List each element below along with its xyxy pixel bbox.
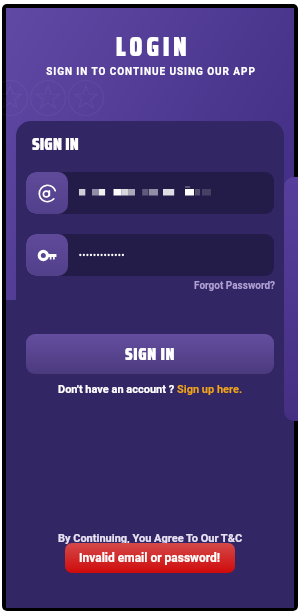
staticText: Invalid email or password!: [79, 551, 221, 565]
staticText: LOGIN: [9, 26, 297, 67]
staticText: Don't have an account ?: [58, 383, 177, 396]
staticText: SIGN IN TO CONTINUE USING OUR APP: [7, 66, 295, 78]
staticText: SIGN IN: [32, 131, 79, 158]
button[interactable]: Email: [26, 172, 274, 214]
button[interactable]: Invalid email or password!: [65, 543, 235, 573]
other: Email: [38, 184, 57, 203]
staticText: By Continuing, You Agree To Our T&C: [6, 532, 294, 545]
button[interactable]: Password: [26, 234, 274, 276]
button[interactable]: Sign up here.: [177, 383, 243, 396]
staticText: SIGN IN: [125, 341, 176, 368]
button[interactable]: SIGN IN: [26, 334, 274, 374]
button[interactable]: Forgot Password?: [194, 280, 276, 292]
other: Password: [38, 246, 57, 265]
